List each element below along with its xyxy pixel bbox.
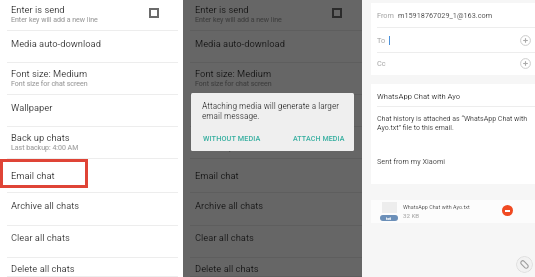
button[interactable]: Remove attachment bbox=[502, 205, 513, 216]
button[interactable]: Back up chats bbox=[0, 127, 178, 159]
button[interactable]: Add Cc bbox=[520, 58, 531, 69]
staticText: Clear all chats bbox=[11, 232, 70, 243]
staticText: Archive all chats bbox=[11, 200, 80, 211]
staticText: Enter is send bbox=[195, 4, 249, 15]
staticText: ATTACH MEDIA bbox=[293, 134, 345, 142]
staticText: To bbox=[377, 36, 386, 45]
button[interactable]: Enter is send toggle bbox=[332, 8, 342, 18]
staticText: txt bbox=[386, 216, 392, 221]
staticText: m15918767029_1@163.com bbox=[398, 11, 493, 20]
button[interactable]: Add recipient bbox=[520, 35, 531, 46]
staticText: Email chat bbox=[195, 170, 239, 181]
button[interactable]: Media auto-download bbox=[0, 31, 178, 63]
staticText: Enter key will add a new line bbox=[195, 16, 282, 24]
staticText: Font size for chat screen bbox=[11, 80, 88, 88]
button[interactable]: Enter is send bbox=[0, 0, 178, 31]
staticText: Back up chats bbox=[195, 132, 254, 143]
staticText: Wallpaper bbox=[195, 102, 237, 113]
button[interactable]: Back up chats bbox=[183, 127, 362, 159]
button[interactable]: Delete all chats bbox=[183, 258, 362, 277]
staticText: Back up chats bbox=[11, 132, 70, 143]
button[interactable]: WITHOUT MEDIA bbox=[203, 134, 261, 143]
button[interactable]: Font size: Medium bbox=[183, 63, 362, 95]
staticText: Cc bbox=[377, 59, 386, 68]
button[interactable]: Email chat bbox=[183, 159, 362, 193]
staticText: WhatsApp Chat with Ayo.txt bbox=[403, 204, 470, 210]
staticText: Enter is send bbox=[11, 4, 65, 15]
button[interactable]: Wallpaper bbox=[0, 95, 178, 127]
staticText: Font size for chat screen bbox=[195, 80, 272, 88]
button[interactable]: Attach file bbox=[516, 256, 533, 273]
staticText: Email chat bbox=[11, 170, 55, 181]
staticText: Enter key will add a new line bbox=[11, 16, 98, 24]
button[interactable]: Email chat bbox=[0, 159, 178, 193]
staticText: Clear all chats bbox=[195, 232, 254, 243]
staticText: Wallpaper bbox=[11, 102, 53, 113]
staticText: Archive all chats bbox=[195, 200, 264, 211]
button[interactable]: Archive all chats bbox=[0, 193, 178, 226]
staticText: WITHOUT MEDIA bbox=[203, 134, 261, 143]
button[interactable]: Delete all chats bbox=[0, 258, 178, 277]
button[interactable]: Enter is send bbox=[183, 0, 362, 31]
staticText: Sent from my Xiaomi bbox=[377, 157, 446, 166]
button[interactable]: Font size: Medium bbox=[0, 63, 178, 95]
staticText: Chat history is attached as “WhatsApp Ch… bbox=[377, 115, 528, 132]
button[interactable]: ATTACH MEDIA bbox=[293, 134, 345, 142]
button[interactable]: Clear all chats bbox=[0, 226, 178, 258]
button[interactable]: Media auto-download bbox=[183, 31, 362, 63]
button[interactable]: Archive all chats bbox=[183, 193, 362, 226]
staticText: Delete all chats bbox=[195, 263, 259, 274]
staticText: 32 KB bbox=[403, 212, 420, 219]
staticText: Font size: Medium bbox=[11, 68, 88, 79]
staticText: Font size: Medium bbox=[195, 68, 272, 79]
button[interactable]: Cc bbox=[371, 52, 535, 75]
staticText: From bbox=[377, 11, 394, 20]
button[interactable]: From bbox=[371, 3, 535, 27]
button[interactable]: Wallpaper bbox=[183, 95, 362, 127]
button[interactable]: To bbox=[371, 28, 535, 52]
staticText: Last backup: 4:00 AM bbox=[195, 144, 263, 152]
staticText: Attaching media will generate a larger e… bbox=[202, 101, 347, 121]
button[interactable]: Clear all chats bbox=[183, 226, 362, 258]
staticText: Last backup: 4:00 AM bbox=[11, 144, 79, 152]
button[interactable]: Enter is send toggle bbox=[149, 8, 159, 18]
button[interactable]: txt bbox=[371, 200, 535, 223]
button[interactable]: Chat history is attached as “WhatsApp Ch… bbox=[377, 115, 528, 166]
staticText: Media auto-download bbox=[195, 38, 285, 49]
button[interactable]: WhatsApp Chat with Ayo bbox=[371, 84, 535, 106]
staticText: WhatsApp Chat with Ayo bbox=[377, 92, 461, 101]
staticText: Delete all chats bbox=[11, 263, 75, 274]
staticText: Media auto-download bbox=[11, 38, 101, 49]
